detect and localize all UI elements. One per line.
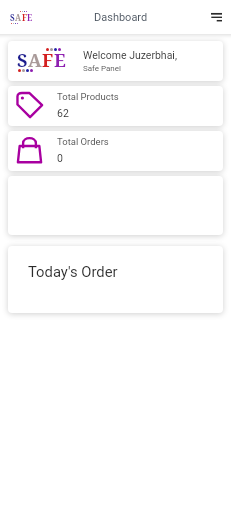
staticText: E <box>27 12 33 23</box>
staticText: F <box>42 48 54 73</box>
button[interactable]: S <box>8 41 223 81</box>
staticText: Total Products <box>57 91 119 102</box>
staticText: Dashboard <box>94 11 148 24</box>
staticText: S <box>10 12 15 23</box>
staticText: A <box>28 48 42 73</box>
button[interactable]: Total Products <box>8 86 223 126</box>
staticText: S <box>17 48 28 73</box>
staticText: F <box>22 12 27 23</box>
staticText: 62 <box>57 107 69 119</box>
button[interactable]: Total Orders <box>8 131 223 171</box>
staticText: A <box>15 12 22 23</box>
staticText: Today's Order <box>28 263 118 280</box>
staticText: Welcome Juzerbhai, <box>83 49 177 61</box>
button[interactable]: Menu <box>205 6 227 28</box>
staticText: Safe Panel <box>83 64 121 73</box>
staticText: 0 <box>57 152 63 164</box>
staticText: Total Orders <box>57 136 109 147</box>
button[interactable]: Today's Order <box>8 246 223 313</box>
staticText: E <box>54 48 66 73</box>
